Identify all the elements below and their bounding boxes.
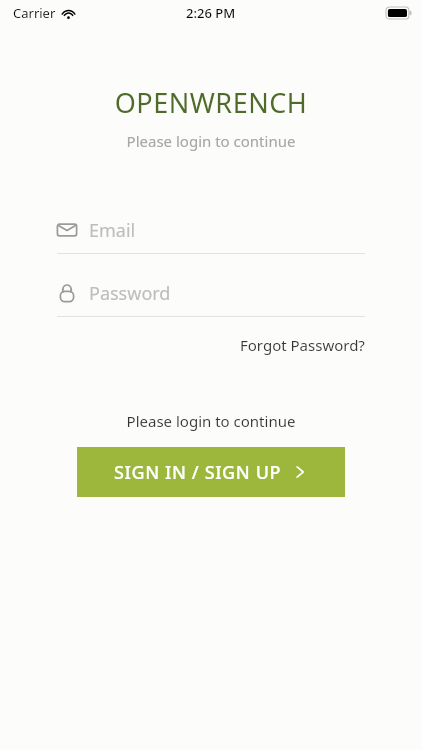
button[interactable]: Email field: [57, 213, 365, 254]
staticText: Please login to continue: [0, 411, 422, 431]
staticText: Password: [89, 281, 171, 306]
staticText: OPENWRENCH: [0, 84, 422, 121]
staticText: 2:26 PM: [186, 4, 236, 22]
staticText: SIGN IN / SIGN UP: [114, 460, 282, 485]
staticText: Forgot Password?: [240, 335, 365, 355]
staticText: Email: [89, 218, 136, 243]
staticText: Please login to continue: [0, 131, 422, 151]
button[interactable]: SIGN IN / SIGN UP: [77, 447, 345, 497]
button[interactable]: Password field: [57, 276, 365, 317]
staticText: Carrier: [13, 4, 56, 22]
button[interactable]: Forgot Password?: [240, 331, 365, 359]
